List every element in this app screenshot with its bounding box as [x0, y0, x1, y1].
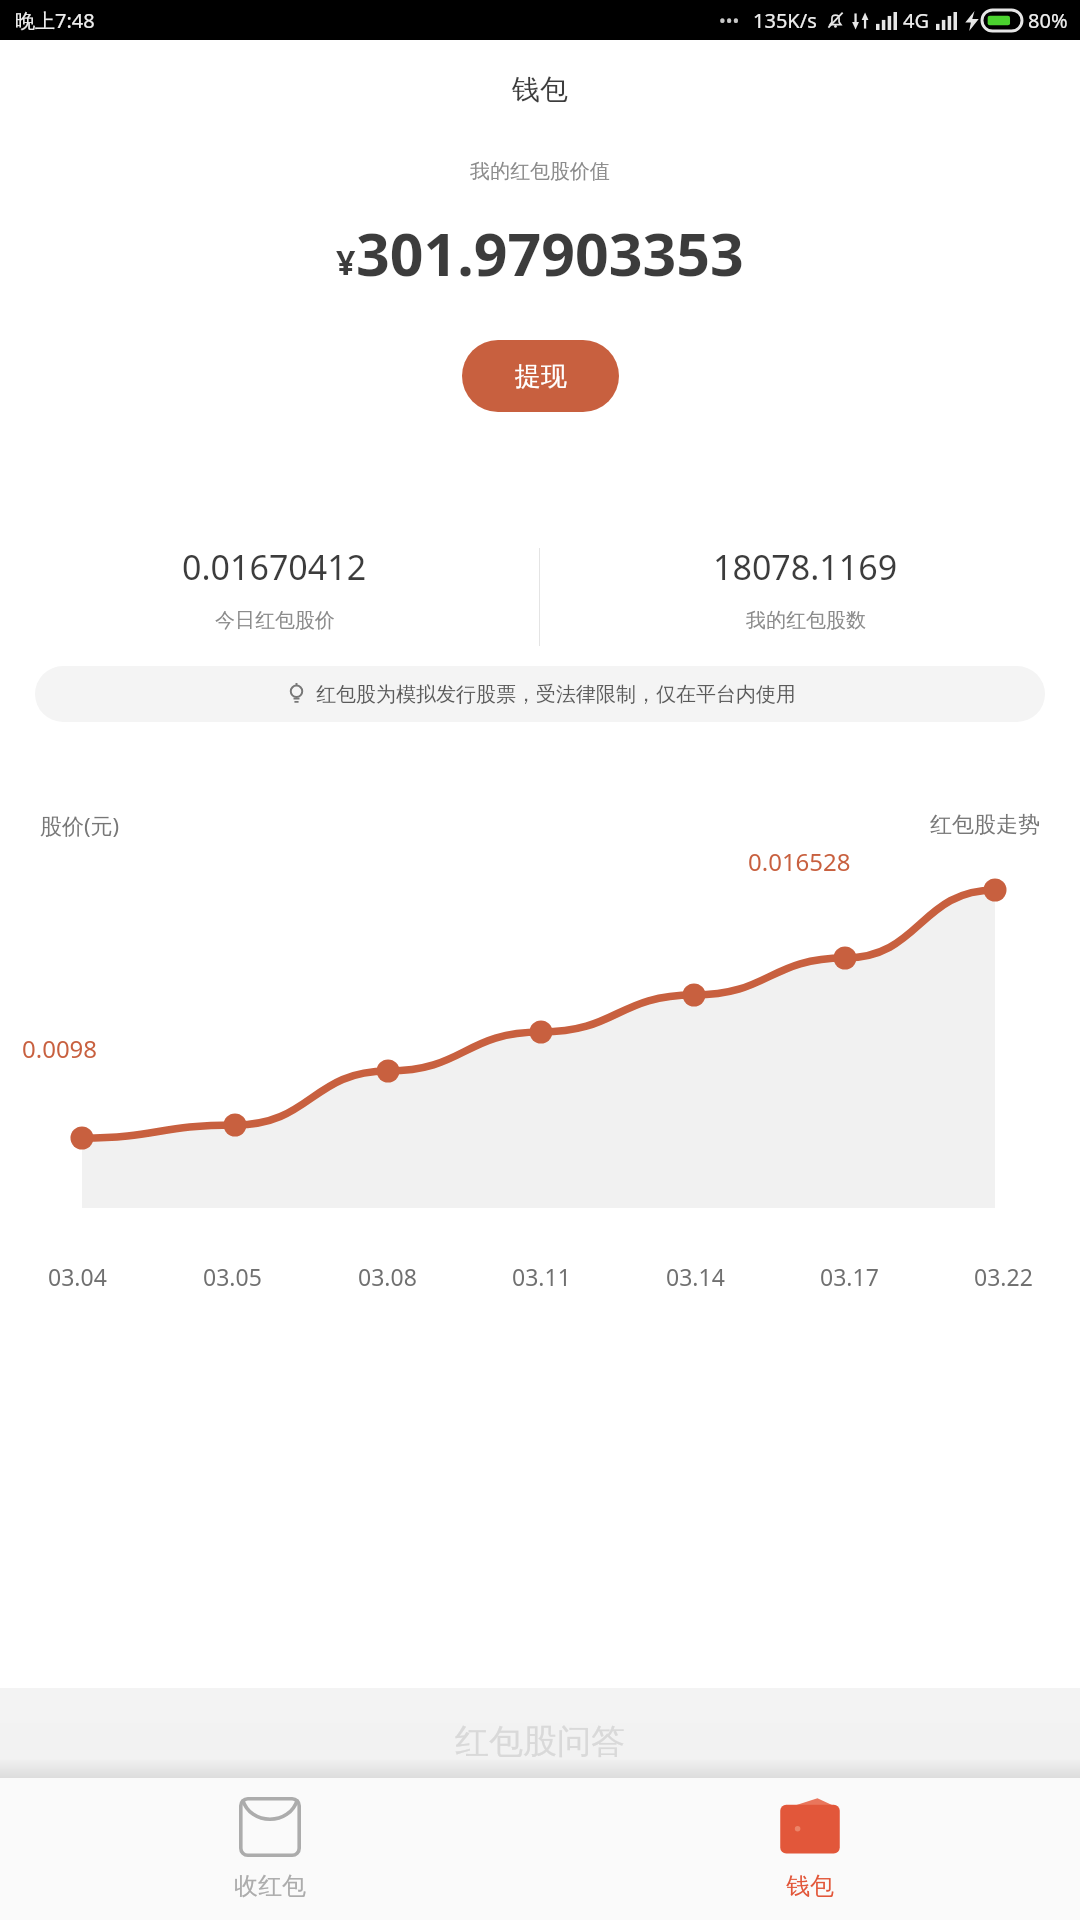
staticText: 红包股走势 [930, 811, 1040, 839]
staticText: 收红包 [234, 1871, 306, 1901]
staticText: 301.97903353 [356, 213, 744, 293]
button[interactable]: 收红包 [0, 1778, 540, 1920]
staticText: 18078.1169 [713, 544, 898, 590]
staticText: 03.04 [48, 1261, 107, 1292]
staticText: 03.08 [358, 1261, 417, 1292]
staticText: 4G [903, 7, 929, 34]
button[interactable]: 红包股问答 [0, 1688, 1080, 1778]
staticText: 红包股问答 [455, 1720, 625, 1763]
staticText: 红包股为模拟发行股票，受法律限制，仅在平台内使用 [316, 682, 796, 707]
staticText: 0.01670412 [182, 544, 367, 590]
staticText: 80% [1028, 7, 1068, 34]
staticText: 03.17 [820, 1261, 879, 1292]
staticText: 我的红包股价值 [470, 159, 610, 184]
staticText: 钱包 [512, 72, 568, 107]
button[interactable]: 钱包 [540, 1778, 1080, 1920]
staticText: ••• [719, 8, 740, 33]
staticText: 我的红包股数 [746, 608, 866, 633]
staticText: 0.016528 [748, 845, 851, 878]
staticText: 0.0098 [22, 1032, 98, 1065]
staticText: 今日红包股价 [215, 608, 335, 633]
button[interactable]: 提现 [462, 340, 619, 412]
staticText: 股价(元) [40, 810, 120, 840]
staticText: ¥ [336, 239, 356, 285]
staticText: 03.05 [203, 1261, 262, 1292]
staticText: 钱包 [786, 1871, 834, 1901]
staticText: 晚上7:48 [15, 7, 95, 34]
staticText: 03.22 [974, 1261, 1033, 1292]
staticText: 03.11 [512, 1261, 571, 1292]
staticText: 提现 [515, 360, 567, 393]
staticText: 03.14 [666, 1261, 725, 1292]
staticText: 135K/s [753, 7, 817, 34]
